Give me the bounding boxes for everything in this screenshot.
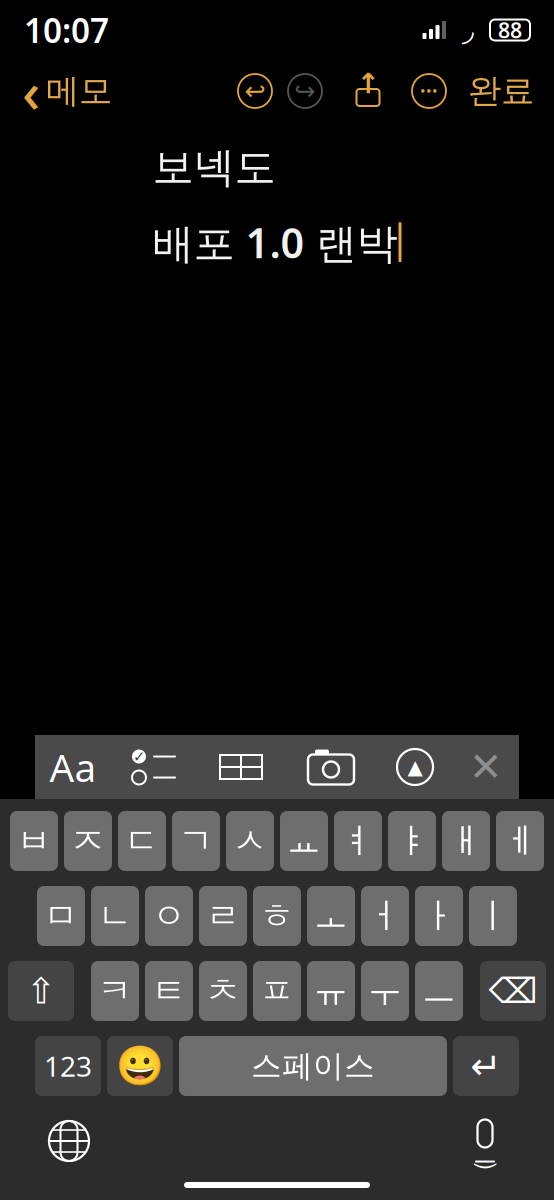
button[interactable]: ㅛ [280, 811, 328, 871]
staticText: ㄱ [178, 820, 213, 862]
button[interactable]: 스페이스 [179, 1036, 447, 1096]
button[interactable]: ㄱ [172, 811, 220, 871]
button[interactable]: ㅠ [307, 961, 355, 1021]
button[interactable]: Format [35, 735, 111, 799]
staticText: ㅎ [259, 895, 294, 937]
staticText: ㅜ [367, 970, 402, 1012]
staticText: ⌫ [488, 971, 537, 1011]
button[interactable]: ㅍ [253, 961, 301, 1021]
staticText: ↑ [356, 68, 379, 99]
button[interactable]: Dictation [454, 1110, 516, 1172]
button[interactable]: ㅡ [415, 961, 463, 1021]
staticText: 88 [498, 16, 522, 44]
staticText: ••• [420, 81, 438, 101]
staticText: ㅋ [97, 970, 132, 1012]
staticText: 10:07 [24, 8, 109, 52]
staticText: ↪ [294, 77, 315, 105]
button[interactable]: ㅁ [37, 886, 85, 946]
button[interactable]: Emoji [107, 1036, 173, 1096]
staticText: 보넥도 [152, 142, 275, 193]
staticText: ㅍ [259, 970, 294, 1012]
staticText: 스페이스 [251, 1047, 375, 1085]
staticText: ㅂ [16, 820, 51, 862]
button[interactable]: ㅓ [361, 886, 409, 946]
staticText: ㅇ [151, 895, 186, 937]
staticText: 123 [44, 1047, 92, 1085]
staticText: 완료 [468, 70, 534, 111]
staticText: ↵ [470, 1045, 501, 1087]
button[interactable]: ㅎ [253, 886, 301, 946]
button[interactable]: Change keyboard language [38, 1110, 100, 1172]
button[interactable]: ‹ [18, 65, 116, 117]
button[interactable]: ㅐ [442, 811, 490, 871]
button[interactable]: Redo [280, 65, 330, 117]
button[interactable]: ㅏ [415, 886, 463, 946]
staticText: ㅁ [43, 895, 78, 937]
staticText: ㄴ [97, 895, 132, 937]
staticText: ㅠ [313, 970, 348, 1012]
staticText: ㅗ [313, 895, 348, 937]
staticText: ㅔ [502, 820, 537, 862]
staticText: 😀 [116, 1044, 164, 1088]
button[interactable]: Shift [8, 961, 74, 1021]
button[interactable]: More [406, 65, 452, 117]
button[interactable]: ㅣ [469, 886, 517, 946]
button[interactable]: ㅗ [307, 886, 355, 946]
staticText: ㅐ [448, 820, 483, 862]
button[interactable]: 123 [35, 1036, 101, 1096]
button[interactable]: ㅊ [199, 961, 247, 1021]
staticText: ‹ [22, 54, 40, 128]
staticText: ㅣ [475, 895, 510, 937]
staticText: ✕ [469, 744, 503, 790]
button[interactable]: ㅈ [64, 811, 112, 871]
button[interactable]: ㅂ [10, 811, 58, 871]
staticText: ⏝ [473, 1142, 496, 1166]
button[interactable]: Table [197, 735, 285, 799]
button[interactable]: ㅋ [91, 961, 139, 1021]
button[interactable]: ㄴ [91, 886, 139, 946]
button[interactable]: 완료 [466, 65, 536, 117]
button[interactable]: ㅇ [145, 886, 193, 946]
staticText: ✓ [133, 748, 145, 765]
staticText: ㄷ [124, 820, 159, 862]
button[interactable]: Return [453, 1036, 519, 1096]
staticText: ㅈ [70, 820, 105, 862]
button[interactable]: ㄹ [199, 886, 247, 946]
staticText: ⇧ [26, 971, 56, 1011]
staticText: Aa [49, 741, 96, 793]
staticText: ㅑ [394, 820, 429, 862]
button[interactable]: ㅌ [145, 961, 193, 1021]
staticText: ▲ [407, 756, 422, 778]
staticText: 메모 [46, 70, 112, 111]
button[interactable]: Undo [230, 65, 280, 117]
staticText: 배포 1.0 랜박 [152, 215, 397, 270]
staticText: ㅛ [286, 820, 321, 862]
staticText: ㅏ [421, 895, 456, 937]
staticText: ㅓ [367, 895, 402, 937]
button[interactable]: Close keyboard [453, 735, 519, 799]
staticText: ↩ [244, 77, 265, 105]
button[interactable]: ㄷ [118, 811, 166, 871]
staticText: ㅅ [232, 820, 267, 862]
button[interactable]: ㅔ [496, 811, 544, 871]
staticText: ㅕ [340, 820, 375, 862]
staticText: ㅊ [205, 970, 240, 1012]
staticText: ◞ [462, 13, 474, 47]
button[interactable]: Camera [285, 735, 377, 799]
staticText: ㅡ [421, 970, 456, 1012]
button[interactable]: ㅜ [361, 961, 409, 1021]
button[interactable]: ㅅ [226, 811, 274, 871]
button[interactable]: Delete [480, 961, 546, 1021]
button[interactable]: Markup [377, 735, 453, 799]
staticText: ㅌ [151, 970, 186, 1012]
button[interactable]: Checklist [111, 735, 197, 799]
button[interactable]: Share [348, 65, 388, 117]
button[interactable]: ㅑ [388, 811, 436, 871]
staticText: ㄹ [205, 895, 240, 937]
button[interactable]: ㅕ [334, 811, 382, 871]
